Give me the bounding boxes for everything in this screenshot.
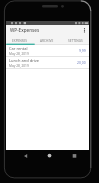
staticText: May 28, 2019 [9,64,29,68]
button[interactable]: EXPENSES [6,35,33,44]
staticText: 20,00 [77,60,86,65]
staticText: ARCHIVE [40,39,54,43]
button[interactable] [14,150,38,162]
staticText: 9,99 [79,48,86,53]
button[interactable] [62,150,86,162]
button[interactable]: ARCHIVE [33,35,61,44]
staticText: Lunch and drive [9,58,40,63]
staticText: Car rental [9,46,28,51]
button[interactable]: Car rental [6,45,89,56]
staticText: EXPENSES [12,39,28,43]
staticText: May 28, 2019 [9,52,29,56]
staticText: WP-Expenses [10,27,40,33]
button[interactable]: Lunch and drive [6,57,89,68]
button[interactable]: SETTINGS [61,35,89,44]
button[interactable] [38,150,62,162]
staticText: SETTINGS [68,39,83,43]
